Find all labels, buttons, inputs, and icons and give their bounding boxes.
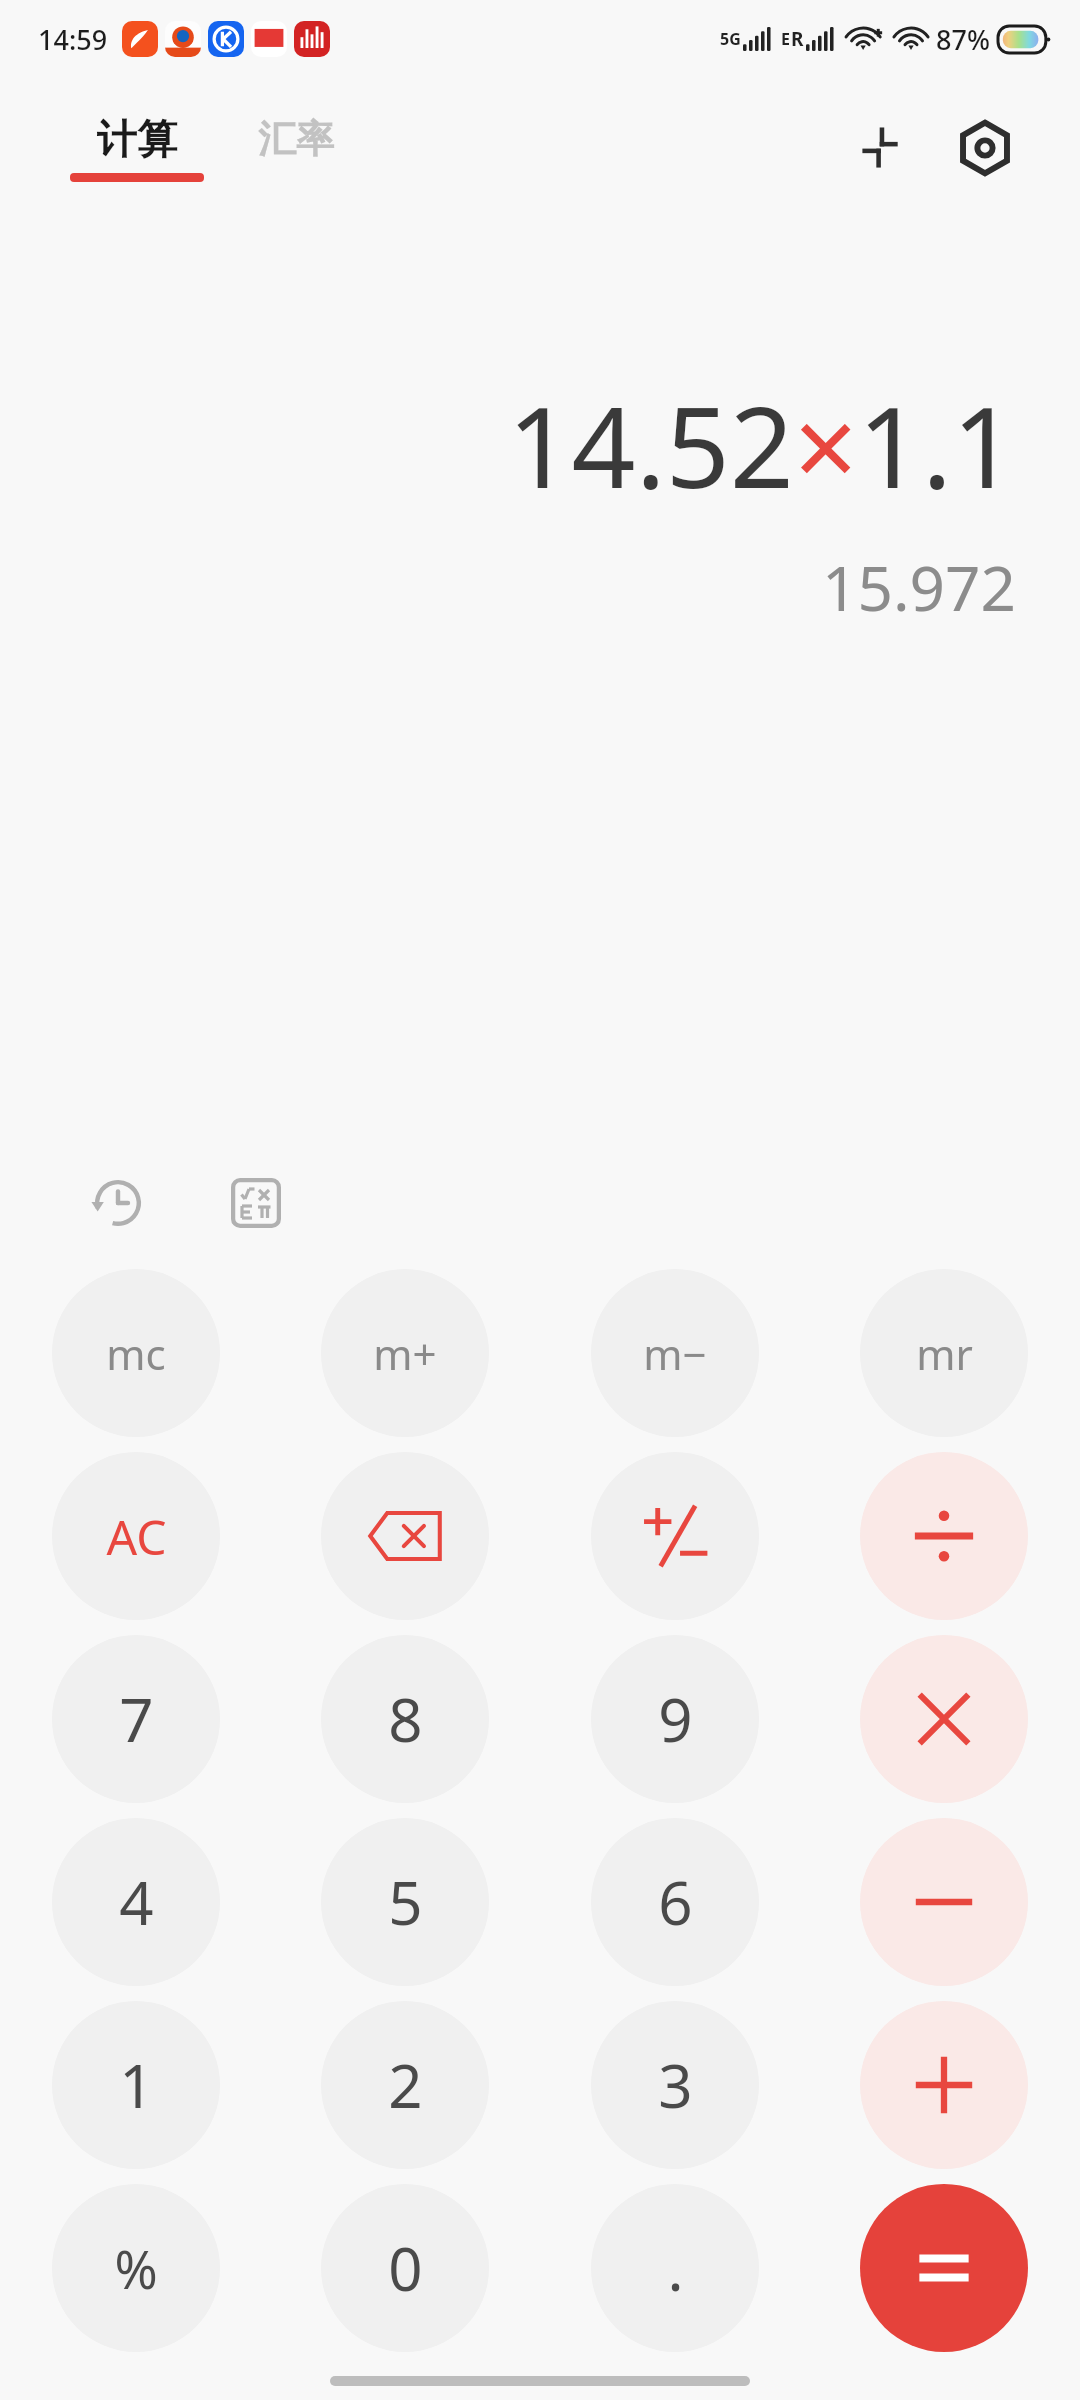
- button[interactable]: History: [80, 1165, 156, 1241]
- staticText: 1: [119, 2044, 154, 2126]
- button[interactable]: Plus: [860, 2001, 1028, 2169]
- button[interactable]: 5: [321, 1818, 489, 1986]
- staticText: 8: [388, 1678, 423, 1760]
- staticText: E: [781, 28, 790, 50]
- staticText: 9: [658, 1678, 693, 1760]
- button[interactable]: AC: [52, 1452, 220, 1620]
- staticText: m+: [373, 1325, 437, 1382]
- button[interactable]: Minus: [860, 1818, 1028, 1986]
- staticText: 2: [388, 2044, 423, 2126]
- button[interactable]: 8: [321, 1635, 489, 1803]
- button[interactable]: Collapse: [838, 105, 924, 191]
- button[interactable]: 6: [591, 1818, 759, 1986]
- staticText: AC: [106, 1504, 167, 1569]
- staticText: 6: [658, 1861, 693, 1943]
- staticText: R: [791, 26, 804, 52]
- button[interactable]: Backspace: [321, 1452, 489, 1620]
- button[interactable]: Scientific: [218, 1165, 294, 1241]
- button[interactable]: 7: [52, 1635, 220, 1803]
- staticText: 3: [658, 2044, 693, 2126]
- staticText: 0: [388, 2227, 423, 2309]
- staticText: 15.972: [822, 545, 1016, 629]
- button[interactable]: %: [52, 2184, 220, 2352]
- button[interactable]: m+: [321, 1269, 489, 1437]
- staticText: 14:59: [38, 21, 108, 58]
- button[interactable]: .: [591, 2184, 759, 2352]
- button[interactable]: 计算: [70, 114, 204, 182]
- button[interactable]: Divide: [860, 1452, 1028, 1620]
- button[interactable]: Settings: [942, 105, 1028, 191]
- button[interactable]: 3: [591, 2001, 759, 2169]
- button[interactable]: m−: [591, 1269, 759, 1437]
- staticText: mc: [106, 1325, 166, 1382]
- staticText: 5G: [720, 28, 741, 50]
- button[interactable]: 4: [52, 1818, 220, 1986]
- staticText: 4: [119, 1861, 154, 1943]
- button[interactable]: 0: [321, 2184, 489, 2352]
- staticText: 14.52×1.1: [507, 368, 1016, 521]
- button[interactable]: mr: [860, 1269, 1028, 1437]
- staticText: 7: [119, 1678, 154, 1760]
- staticText: m−: [643, 1325, 707, 1382]
- staticText: 5: [388, 1861, 423, 1943]
- button[interactable]: Multiply: [860, 1635, 1028, 1803]
- button[interactable]: 1: [52, 2001, 220, 2169]
- staticText: mr: [916, 1325, 973, 1382]
- staticText: %: [114, 2233, 158, 2304]
- button[interactable]: mc: [52, 1269, 220, 1437]
- staticText: 汇率: [258, 115, 334, 163]
- button[interactable]: 汇率: [258, 115, 334, 181]
- staticText: 87%: [936, 21, 990, 58]
- button[interactable]: Equals: [860, 2184, 1028, 2352]
- staticText: 计算: [97, 114, 177, 164]
- staticText: .: [667, 2227, 684, 2309]
- button[interactable]: 9: [591, 1635, 759, 1803]
- button[interactable]: Toggle sign: [591, 1452, 759, 1620]
- button[interactable]: 2: [321, 2001, 489, 2169]
